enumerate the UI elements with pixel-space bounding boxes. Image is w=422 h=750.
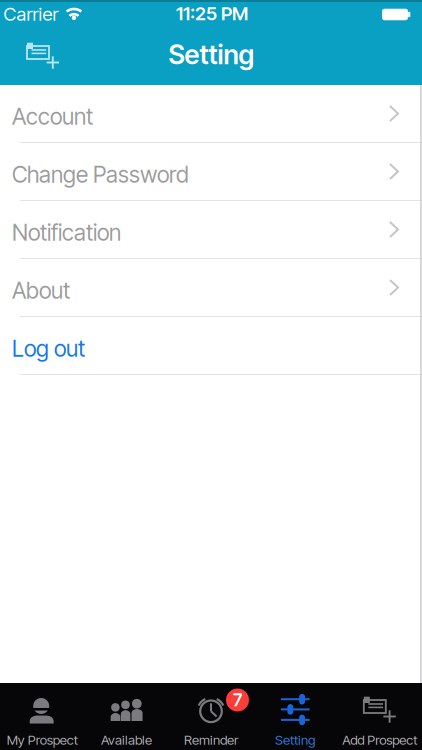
button[interactable]: Setting xyxy=(253,683,338,750)
button[interactable]: Account xyxy=(0,85,422,143)
button[interactable]: Log out xyxy=(0,317,422,375)
button[interactable]: Notification xyxy=(0,201,422,259)
staticText: My Prospect xyxy=(7,732,78,748)
staticText: Reminder xyxy=(184,732,238,748)
staticText: Add Prospect xyxy=(342,732,417,748)
button[interactable]: My Prospect xyxy=(0,683,84,750)
staticText: Log out xyxy=(12,335,85,362)
staticText: Available xyxy=(101,732,152,748)
button[interactable]: Add Prospect xyxy=(338,683,422,750)
staticText: 11:25 PM xyxy=(176,2,248,24)
button[interactable]: Change Password xyxy=(0,143,422,201)
button[interactable]: About xyxy=(0,259,422,317)
button[interactable]: Reminder xyxy=(169,683,253,750)
staticText: Carrier xyxy=(3,3,58,25)
staticText: Notification xyxy=(12,219,121,246)
staticText: About xyxy=(12,277,70,304)
staticText: Change Password xyxy=(12,161,189,188)
staticText: Setting xyxy=(275,732,316,748)
button[interactable]: Add Prospect xyxy=(21,36,65,76)
button[interactable]: Available xyxy=(84,683,169,750)
staticText: 7 xyxy=(233,690,242,710)
staticText: Account xyxy=(12,103,93,130)
staticText: Setting xyxy=(168,39,254,70)
